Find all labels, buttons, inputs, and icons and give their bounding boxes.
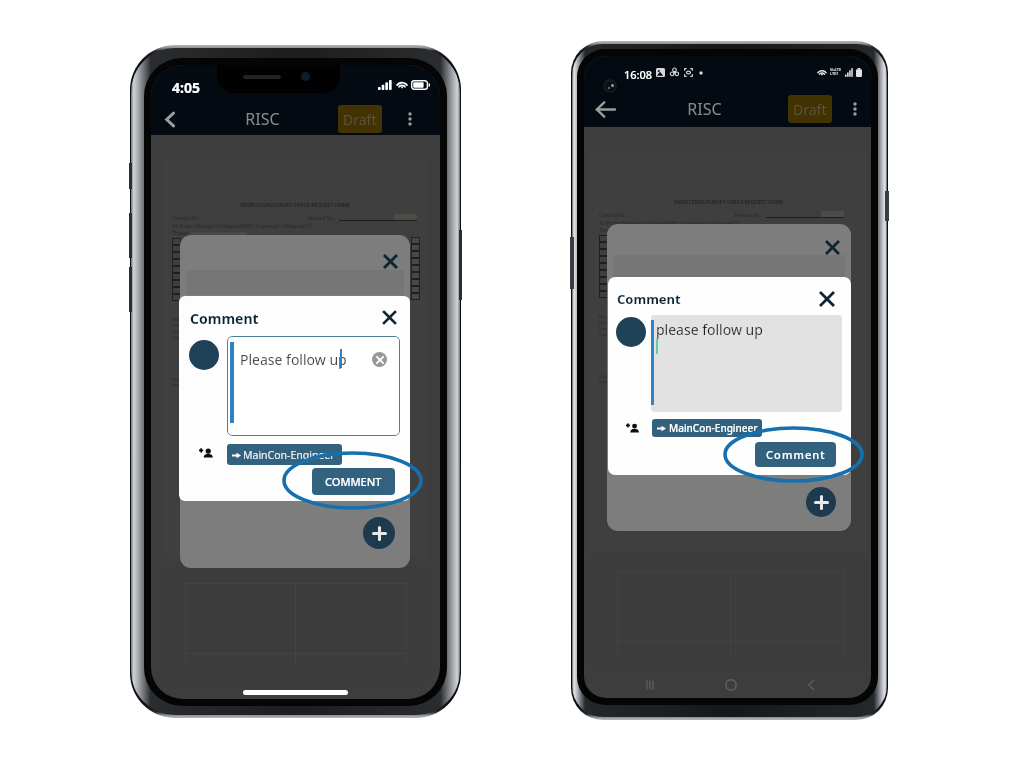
staticText: Contract No.: [172, 215, 200, 221]
staticText: 4:05: [172, 78, 200, 97]
button[interactable]: Back: [590, 94, 620, 124]
staticText: To: Project Manager's Delegate(PMD) / Su…: [172, 223, 312, 229]
staticText: Ref: Drawing No./Specification Clause: [172, 317, 246, 323]
button[interactable]: Close: [378, 249, 402, 273]
staticText: Comment: [617, 290, 681, 308]
staticText: To: Project Manager's Delegate(PMD) / Su…: [599, 220, 739, 226]
staticText: Location:: [172, 329, 190, 335]
staticText: VoLTE: [830, 67, 842, 72]
button[interactable]: Comment: [755, 442, 836, 467]
button[interactable]: Draft: [338, 105, 382, 133]
button[interactable]: Add: [806, 487, 836, 517]
staticText: Through:: [599, 227, 619, 233]
staticText: INSPECTION/SURVEY CHECK REQUEST FORM: [589, 199, 868, 206]
staticText: RISC: [245, 108, 280, 130]
button[interactable]: MainCon-Engineer: [652, 419, 762, 437]
button[interactable]: Close dialog: [814, 286, 840, 312]
staticText: Draft: [343, 110, 377, 129]
button[interactable]: Recents: [635, 670, 665, 698]
staticText: Ref: Drawing No./Specification Clause: [599, 314, 673, 320]
staticText: Location:: [599, 326, 617, 332]
staticText: Please follow up: [240, 350, 347, 369]
staticText: INSPECTION/SURVEY CHECK REQUEST FORM: [162, 202, 428, 209]
button[interactable]: Home: [716, 670, 746, 698]
staticText: please follow up: [656, 320, 763, 339]
staticText: Comment: [190, 309, 259, 328]
button[interactable]: MainCon-Engineer: [227, 444, 342, 465]
button[interactable]: Back: [796, 670, 826, 698]
button[interactable]: Draft: [788, 95, 832, 123]
staticText: Contract No.: [599, 212, 627, 218]
staticText: MainCon-Engineer: [669, 421, 758, 435]
staticText: 16:08: [624, 67, 653, 82]
staticText: Comment: [766, 447, 826, 462]
staticText: Date & Time of Inspection/Survey Check:: [599, 320, 679, 326]
button[interactable]: COMMENT: [312, 468, 395, 495]
button[interactable]: Close dialog: [377, 305, 401, 329]
staticText: # countersigned by PMD/SD may be require…: [172, 382, 285, 387]
staticText: Date & Time of Inspection/Survey Check:: [172, 323, 252, 329]
staticText: LTE1: [830, 71, 839, 76]
staticText: Through:: [172, 230, 192, 236]
staticText: Request No.: [735, 212, 762, 218]
button[interactable]: Clear text: [372, 352, 387, 367]
button[interactable]: More options: [396, 105, 424, 133]
staticText: # countersigned by PMD/SD may be require…: [599, 379, 712, 384]
button[interactable]: Close: [820, 235, 845, 260]
staticText: COMMENT: [325, 474, 382, 489]
staticText: Draft: [793, 100, 827, 119]
staticText: *Delete where inappropriate: [172, 377, 218, 382]
staticText: *Delete where inappropriate: [599, 374, 645, 379]
staticText: RISC: [687, 98, 722, 120]
button[interactable]: More options: [841, 95, 869, 123]
button[interactable]: Add: [363, 517, 395, 549]
staticText: Request No.: [308, 215, 335, 221]
staticText: Type of Inspection:: [599, 332, 637, 338]
button[interactable]: Back: [155, 104, 185, 134]
staticText: MainCon-Engineer: [243, 448, 335, 462]
staticText: Type of Inspection:: [172, 335, 210, 341]
